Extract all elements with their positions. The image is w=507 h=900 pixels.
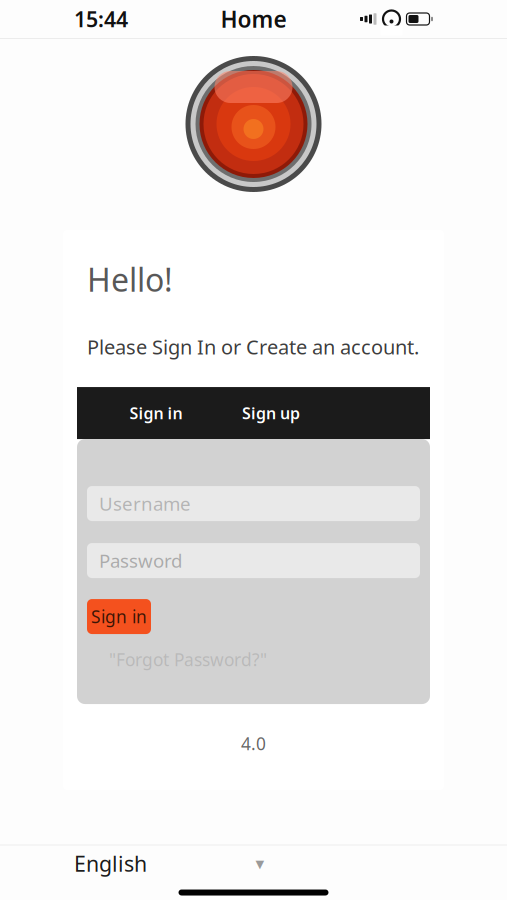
staticText: Hello! [87, 258, 173, 300]
button[interactable]: Sign up [211, 387, 331, 439]
staticText: Home [220, 4, 286, 34]
button[interactable]: Password [87, 543, 420, 578]
button[interactable]: English [74, 841, 147, 886]
staticText: English [74, 849, 147, 878]
button[interactable]: Power [185, 56, 321, 192]
staticText: Sign up [242, 402, 300, 424]
button[interactable]: Sign in [101, 387, 211, 439]
button[interactable]: "Forgot Password?" [87, 642, 267, 677]
staticText: Please Sign In or Create an account. [87, 333, 419, 360]
staticText: 15:44 [74, 5, 128, 33]
staticText: Password [99, 548, 182, 573]
staticText: Sign in [91, 605, 147, 628]
staticText: Sign in [129, 402, 182, 424]
staticText: 4.0 [241, 732, 266, 755]
button[interactable]: Choose language [243, 848, 277, 878]
staticText: Username [99, 491, 191, 516]
staticText: ▾ [255, 854, 264, 873]
button[interactable]: Sign in [87, 599, 151, 634]
staticText: "Forgot Password?" [109, 648, 267, 671]
button[interactable]: Username [87, 486, 420, 521]
